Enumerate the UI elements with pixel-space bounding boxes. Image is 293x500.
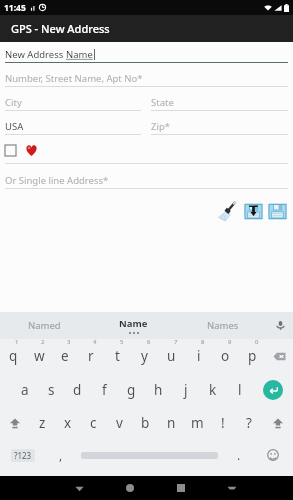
staticText: New Address [5,48,66,61]
button[interactable]: x [55,406,80,439]
button[interactable]: b [132,406,158,439]
staticText: n [167,414,176,432]
button[interactable]: s [38,373,64,406]
button[interactable]: , [46,439,75,471]
button[interactable]: Home [121,479,139,497]
button[interactable]: Emoji [253,439,293,471]
button[interactable]: m [184,406,210,439]
staticText: 6 [147,338,151,346]
button[interactable]: r [78,339,104,373]
staticText: 4 [93,338,97,346]
button[interactable]: . [224,439,253,471]
button[interactable]: f [91,373,118,406]
staticText: State [151,96,174,109]
staticText: q [9,347,18,365]
staticText: f [102,381,107,399]
button[interactable]: City [5,95,141,111]
staticText: w [34,347,45,365]
staticText: i [197,347,201,365]
button[interactable]: Name [89,312,178,339]
button[interactable]: g [118,373,145,406]
button[interactable]: i [185,339,212,373]
staticText: l [238,381,242,399]
button[interactable]: d [64,373,91,406]
button[interactable]: Voice input [267,312,293,339]
staticText: Zip* [151,120,170,133]
button[interactable]: Zip* [151,119,288,135]
button[interactable]: e [52,339,78,373]
button[interactable]: Save as new [266,200,288,222]
staticText: u [167,347,176,365]
staticText: 5 [120,338,124,346]
button[interactable]: ?123 [0,439,46,471]
staticText: m [191,414,204,432]
button[interactable]: a [12,373,38,406]
staticText: o [221,347,230,365]
button[interactable]: Named [0,312,89,339]
button[interactable]: Backspace [266,339,293,373]
staticText: h [154,381,163,399]
staticText: d [73,381,82,399]
button[interactable]: Space [75,439,224,471]
staticText: Name [66,48,93,61]
button[interactable]: ! [210,406,236,439]
staticText: c [90,414,97,432]
button[interactable]: Hide keyboard [70,479,88,497]
staticText: v [116,414,123,432]
staticText: Names [207,319,239,332]
staticText: GPS - New Address [11,21,110,36]
button[interactable]: New Address [5,47,288,63]
staticText: g [127,381,136,399]
button[interactable]: y [131,339,158,373]
staticText: Named [28,319,61,332]
staticText: 11:45 [4,2,26,14]
staticText: s [48,381,55,399]
staticText: 8 [201,338,205,346]
button[interactable]: k [199,373,226,406]
staticText: b [141,414,150,432]
staticText: Name [119,317,148,330]
staticText: . [237,447,241,463]
button[interactable]: USA [5,119,141,135]
button[interactable]: Favourite checkbox [5,145,16,156]
button[interactable]: n [158,406,184,439]
button[interactable]: t [104,339,131,373]
button[interactable]: l [226,373,253,406]
staticText: z [39,414,46,432]
staticText: ? [246,414,252,432]
button[interactable]: Shift [0,406,30,439]
button[interactable]: Shift [262,406,293,439]
staticText: USA [5,120,24,133]
button[interactable]: Switch keyboard [223,479,241,497]
button[interactable]: Number, Street Name, Apt No* [5,71,288,87]
button[interactable]: z [30,406,55,439]
button[interactable]: c [80,406,106,439]
button[interactable]: j [172,373,199,406]
button[interactable]: v [106,406,132,439]
button[interactable]: ? [236,406,262,439]
staticText: 2 [41,338,45,346]
button[interactable]: p [239,339,266,373]
staticText: e [61,347,69,365]
button[interactable]: h [145,373,172,406]
staticText: x [64,414,72,432]
button[interactable]: Names [178,312,267,339]
button[interactable]: Or Single line Address* [5,173,288,189]
staticText: a [21,381,29,399]
button[interactable]: State [151,95,288,111]
button[interactable]: Clear form [215,199,239,223]
staticText: j [184,381,188,399]
staticText: y [141,347,148,365]
staticText: 9 [228,338,232,346]
button[interactable]: q [0,339,26,373]
button[interactable]: Recents [172,479,190,497]
staticText: City [5,96,22,109]
staticText: ?123 [14,450,32,461]
button[interactable]: Enter [253,373,293,406]
button[interactable]: w [26,339,52,373]
button[interactable]: u [158,339,185,373]
staticText: p [248,347,257,365]
staticText: k [209,381,217,399]
button[interactable]: o [212,339,239,373]
button[interactable]: Save [242,200,264,222]
